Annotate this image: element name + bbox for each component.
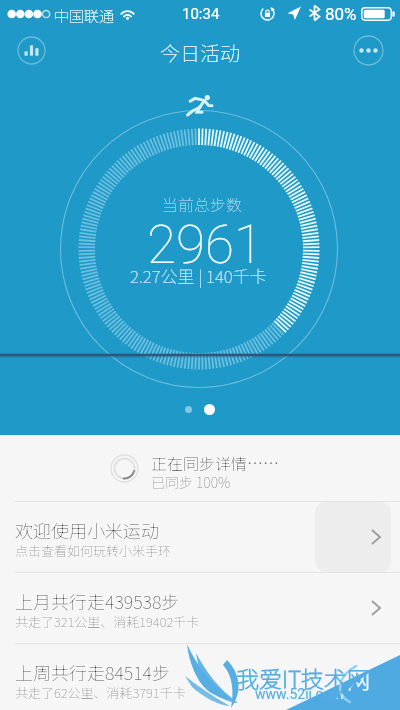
staticText: 2961 [147, 214, 264, 276]
button[interactable]: 统计 [16, 35, 47, 66]
staticText: 已同步 100% [151, 472, 231, 492]
staticText: 欢迎使用小米运动 [15, 517, 159, 543]
staticText: www.52ij.com [255, 686, 344, 702]
staticText: 2.27公里 | 140千卡 [130, 263, 267, 288]
staticText: 共走了321公里、消耗19402千卡 [15, 612, 200, 631]
staticText: 共走了62公里、消耗3791千卡 [15, 683, 186, 702]
staticText: 80% [325, 4, 357, 24]
staticText: 中国联通 [54, 5, 115, 27]
button[interactable]: 上月共行走439538步 [0, 573, 400, 643]
button[interactable]: 欢迎使用小米运动 [0, 502, 400, 572]
staticText: 今日活动 [160, 38, 240, 67]
staticText: 正在同步详情…… [151, 451, 280, 474]
button[interactable]: 上周共行走84514步 [0, 644, 400, 710]
staticText: 我爱IT技术网 [236, 661, 371, 694]
button[interactable]: 正在同步详情…… [0, 435, 400, 501]
staticText: 10:34 [182, 5, 220, 23]
staticText: 点击查看如何玩转小米手环 [15, 541, 172, 560]
staticText: www.52ij.com [255, 686, 344, 702]
staticText: 当前总步数 [162, 192, 243, 215]
staticText: 上月共行走439538步 [15, 588, 180, 614]
staticText: 上周共行走84514步 [15, 659, 170, 685]
button[interactable]: 更多 [353, 35, 384, 66]
staticText: 我爱IT技术网 [236, 661, 371, 694]
